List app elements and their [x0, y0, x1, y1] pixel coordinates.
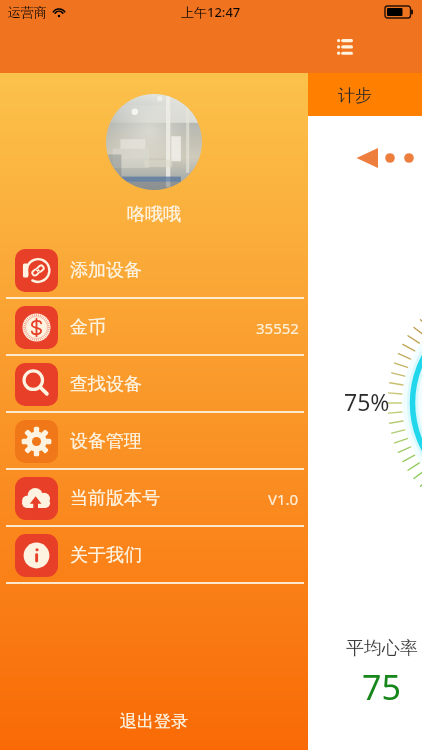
button[interactable]: 金币 — [0, 299, 308, 356]
button[interactable] — [106, 94, 202, 190]
staticText: 关于我们 — [70, 544, 142, 567]
staticText: 添加设备 — [70, 259, 142, 282]
staticText: 当前版本号 — [70, 487, 160, 510]
staticText: 设备管理 — [70, 430, 142, 453]
button[interactable]: Previous page — [350, 143, 418, 173]
staticText: 35552 — [256, 318, 299, 338]
button[interactable]: 退出登录 — [0, 711, 308, 750]
staticText: 查找设备 — [70, 373, 142, 396]
staticText: 运营商 — [8, 4, 47, 20]
staticText: 平均心率 — [346, 637, 418, 660]
staticText: 计步 — [338, 85, 372, 106]
staticText: 75 — [362, 664, 401, 710]
staticText: V1.0 — [268, 489, 299, 509]
staticText: 咯哦哦 — [0, 203, 308, 226]
staticText: 金币 — [70, 316, 106, 339]
button[interactable]: 添加设备 — [0, 242, 308, 299]
button[interactable]: 当前版本号 — [0, 470, 308, 527]
button[interactable]: Menu — [323, 25, 367, 69]
staticText: 上午12:47 — [181, 3, 241, 21]
button[interactable]: 查找设备 — [0, 356, 308, 413]
button[interactable]: 设备管理 — [0, 413, 308, 470]
button[interactable]: 关于我们 — [0, 527, 308, 584]
staticText: 75% — [344, 386, 390, 417]
